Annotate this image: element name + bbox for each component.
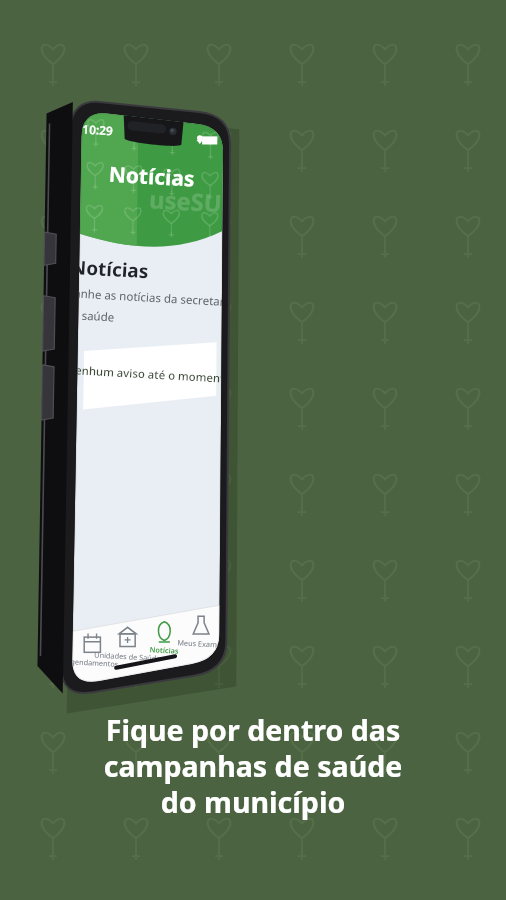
button[interactable]: Fique por dentro das campanhas de saúde … [0, 0, 506, 900]
